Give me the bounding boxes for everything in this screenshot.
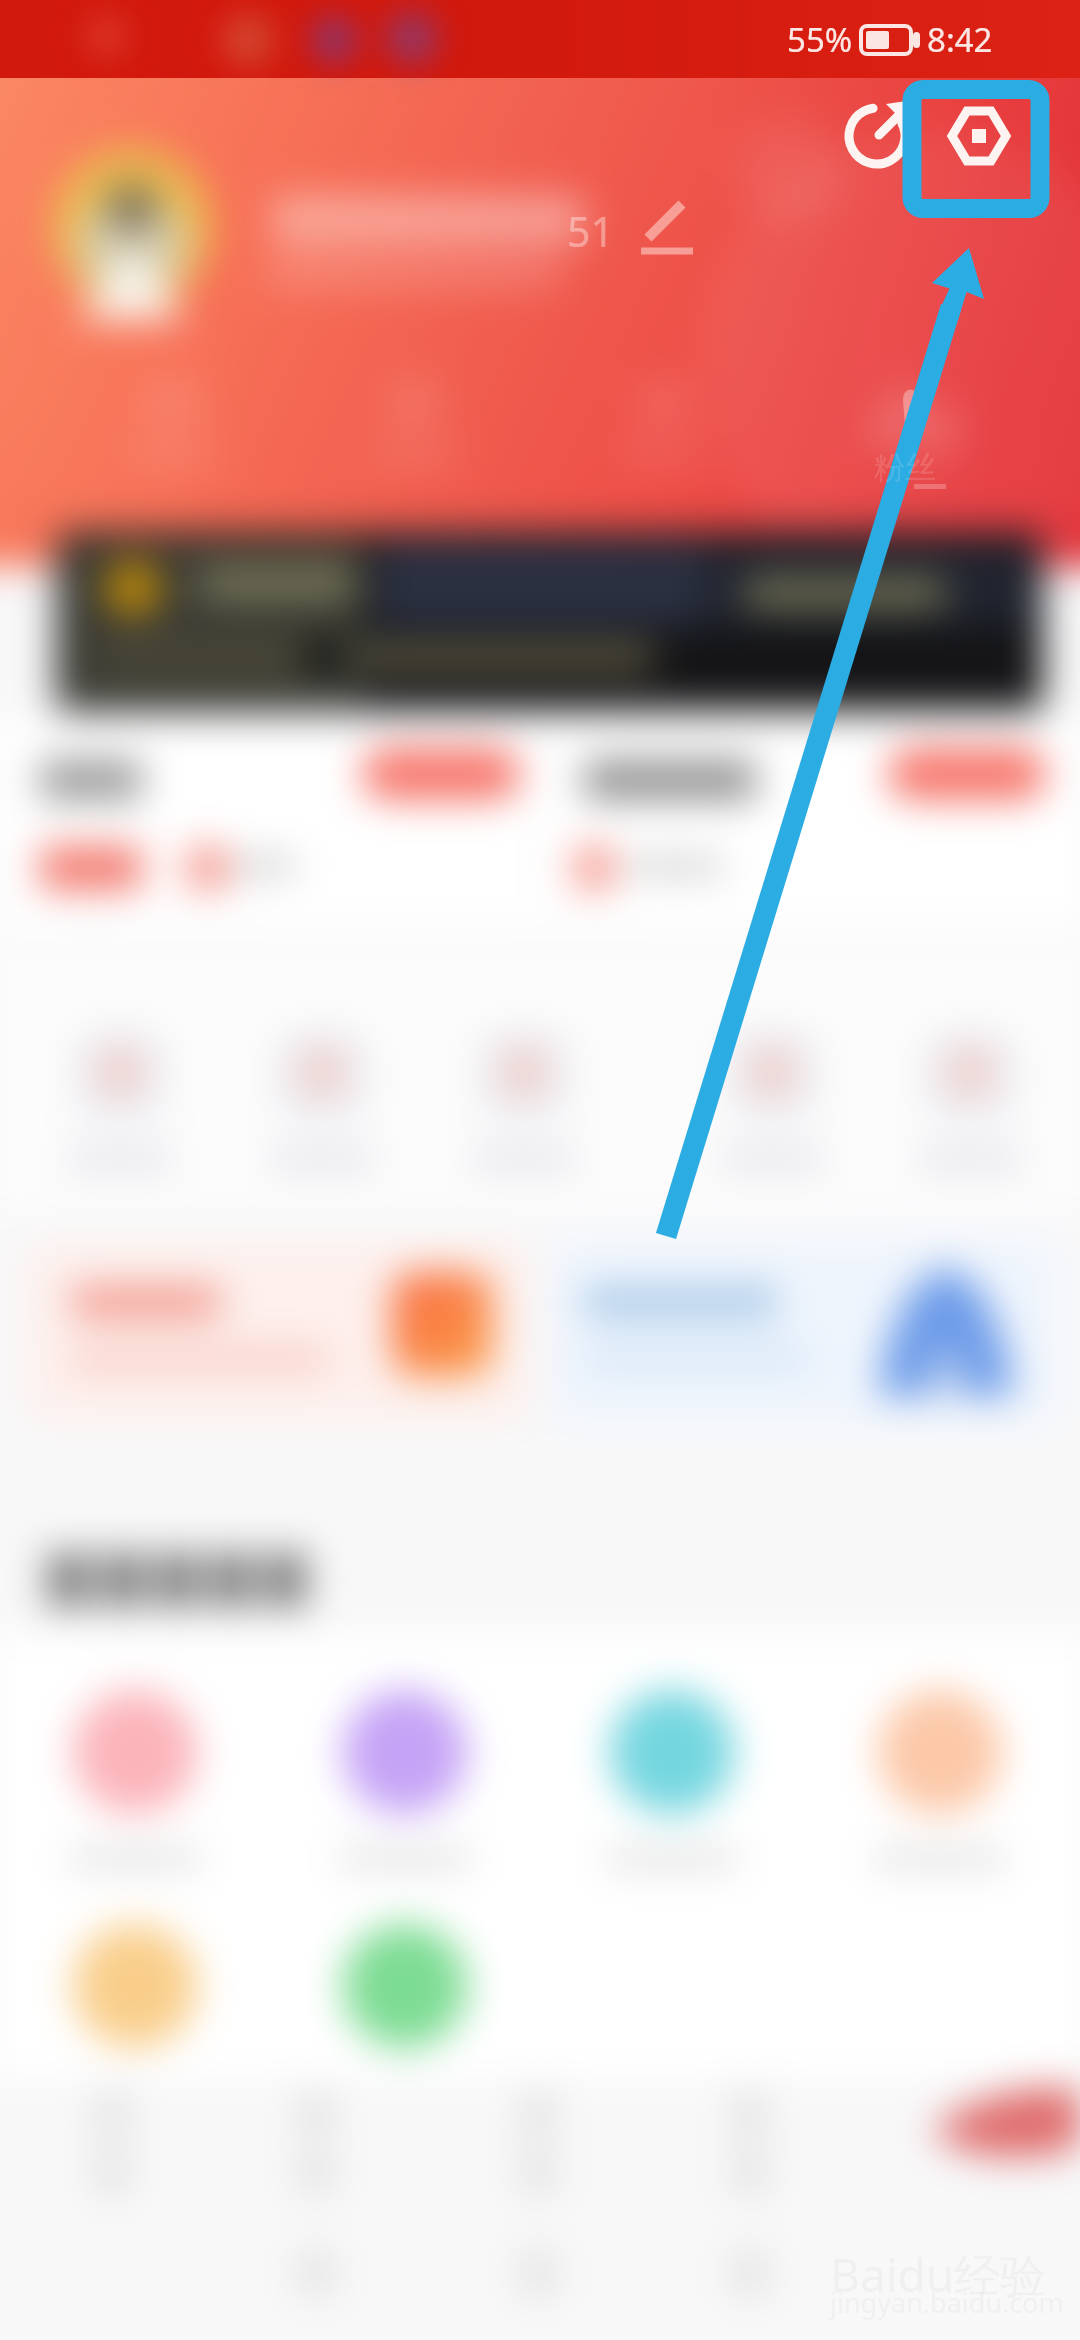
staticText: 51 — [567, 203, 614, 259]
staticText: jingyan.baidu.com — [830, 2284, 1064, 2321]
button[interactable]: Settings — [920, 96, 1032, 204]
button[interactable]: More — [924, 1018, 1016, 1178]
button[interactable]: Shopping — [53, 1910, 217, 2122]
button[interactable]: Wallet — [478, 1018, 570, 1178]
staticText: Baidu经验 — [830, 2243, 1047, 2306]
button[interactable]: Travel — [53, 1676, 217, 1888]
button[interactable]: Pay — [74, 1018, 166, 1178]
button[interactable]: Profile — [30, 150, 730, 320]
button[interactable]: Health — [590, 1676, 754, 1888]
button[interactable]: Promotion banner — [54, 530, 1040, 710]
button[interactable]: Coupons — [542, 722, 1080, 922]
button[interactable]: Games — [323, 1910, 487, 2122]
staticText: 55% — [787, 17, 853, 62]
button[interactable]: Offer card — [28, 1244, 528, 1420]
staticText: 8:42 — [927, 17, 993, 62]
button[interactable]: Me — [658, 2080, 846, 2210]
button[interactable]: Service card — [552, 1244, 1052, 1420]
button[interactable]: Scan — [276, 1018, 368, 1178]
button[interactable]: Finance — [858, 1676, 1022, 1888]
button[interactable]: Discover — [224, 2080, 412, 2210]
button[interactable]: Messages — [446, 2080, 634, 2210]
button[interactable]: Food — [323, 1676, 487, 1888]
staticText: 粉丝 — [874, 448, 936, 487]
button[interactable]: Balance — [0, 722, 538, 922]
button[interactable]: Bills — [726, 1018, 818, 1178]
button[interactable]: Share — [828, 100, 928, 200]
button[interactable]: Home — [20, 2080, 208, 2210]
